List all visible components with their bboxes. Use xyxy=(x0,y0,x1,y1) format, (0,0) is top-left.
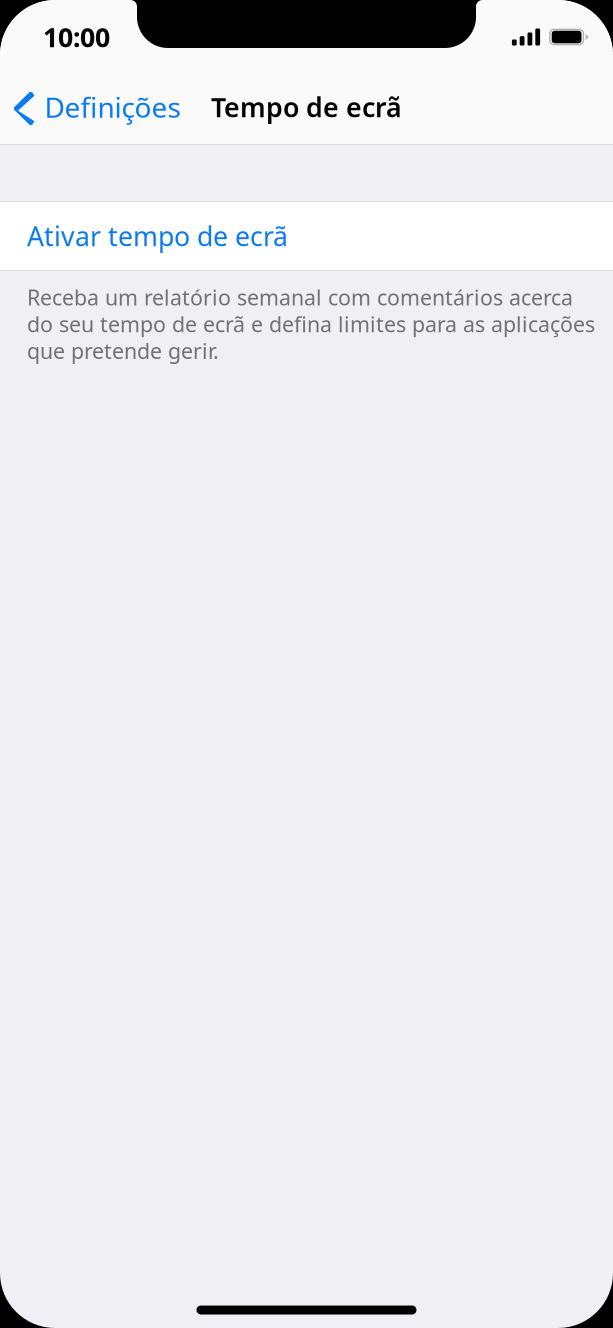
staticText: 10:00 xyxy=(43,19,110,55)
staticText: Definições xyxy=(44,88,180,126)
staticText: Tempo de ecrã xyxy=(211,89,402,125)
staticText: Ativar tempo de ecrã xyxy=(27,218,288,254)
staticText: Receba um relatório semanal com comentár… xyxy=(27,283,595,365)
button[interactable]: Definições xyxy=(0,75,250,144)
button[interactable]: Ativar tempo de ecrã xyxy=(0,202,613,270)
